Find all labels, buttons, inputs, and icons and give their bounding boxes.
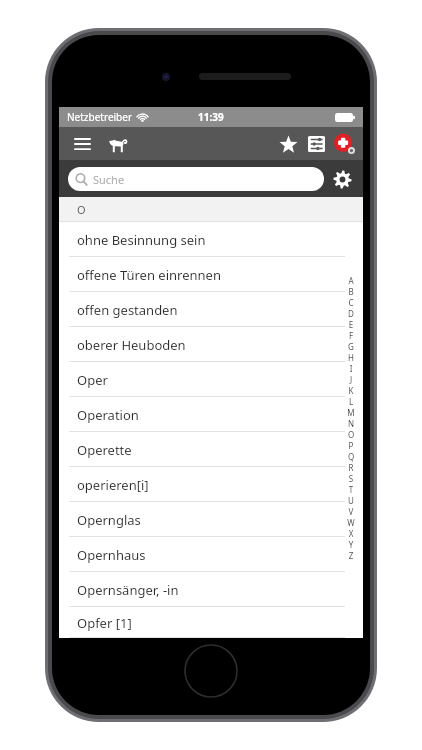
button[interactable]: operieren[i] (59, 467, 363, 502)
staticText: O (345, 429, 357, 440)
staticText: operieren[i] (77, 476, 149, 494)
button[interactable]: offen gestanden (59, 292, 363, 327)
staticText: R (345, 462, 357, 473)
button[interactable]: Opernglas (59, 502, 363, 537)
staticText: P (345, 440, 357, 451)
staticText: B (345, 286, 357, 297)
button[interactable]: Opfer [1] (59, 607, 363, 638)
button[interactable]: Operation (59, 397, 363, 432)
button[interactable]: ohne Besinnung sein (59, 222, 363, 257)
staticText: Opernglas (77, 511, 141, 529)
staticText: 11:39 (198, 110, 224, 124)
staticText: Operette (77, 441, 132, 459)
button[interactable]: oberer Heuboden (59, 327, 363, 362)
button[interactable]: Suche (68, 167, 324, 191)
staticText: offene Türen einrennen (77, 266, 221, 284)
button[interactable]: Opernsänger, -in (59, 572, 363, 607)
staticText: L (345, 396, 357, 407)
staticText: U (345, 495, 357, 506)
staticText: Suche (93, 172, 125, 187)
staticText: Operation (77, 406, 139, 424)
staticText: X (345, 528, 357, 539)
button[interactable]: offene Türen einrennen (59, 257, 363, 292)
staticText: K (345, 385, 357, 396)
staticText: Q (345, 451, 357, 462)
staticText: H (345, 352, 357, 363)
staticText: F (345, 330, 357, 341)
staticText: Opfer [1] (77, 614, 132, 632)
staticText: C (345, 297, 357, 308)
staticText: D (345, 308, 357, 319)
staticText: ohne Besinnung sein (77, 231, 206, 249)
staticText: oberer Heuboden (77, 336, 186, 354)
staticText: Y (345, 539, 357, 550)
button[interactable]: Menu (69, 131, 95, 157)
staticText: O (77, 202, 86, 217)
staticText: N (345, 418, 357, 429)
button[interactable]: Operette (59, 432, 363, 467)
button[interactable]: PONS logo (105, 131, 131, 157)
staticText: T (345, 484, 357, 495)
button[interactable]: Favorites (275, 131, 301, 157)
staticText: E (345, 319, 357, 330)
staticText: Z (345, 550, 357, 561)
button[interactable]: Settings (330, 167, 354, 191)
button[interactable]: Opernhaus (59, 537, 363, 572)
button[interactable]: Add entry (330, 130, 358, 158)
staticText: G (345, 341, 357, 352)
staticText: Opernsänger, -in (77, 581, 179, 599)
staticText: S (345, 473, 357, 484)
staticText: A (345, 275, 357, 286)
staticText: Netzbetreiber (67, 110, 133, 124)
button[interactable]: Oper (59, 362, 363, 397)
staticText: W (345, 517, 357, 528)
staticText: Oper (77, 371, 108, 389)
staticText: Opernhaus (77, 546, 146, 564)
staticText: offen gestanden (77, 301, 178, 319)
staticText: V (345, 506, 357, 517)
staticText: J (345, 374, 357, 385)
button[interactable]: Filter (303, 131, 329, 157)
staticText: I (345, 363, 357, 374)
button[interactable]: Alphabet index (345, 275, 357, 561)
staticText: M (345, 407, 357, 418)
